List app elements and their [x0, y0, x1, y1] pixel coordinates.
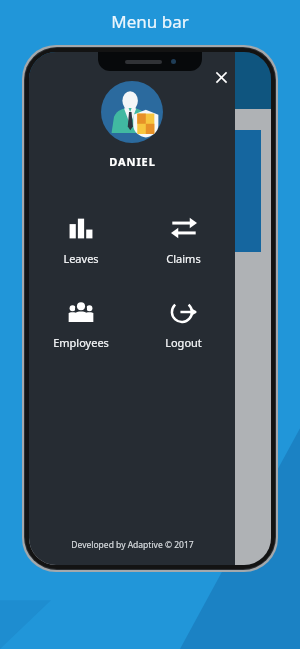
staticText: Claims [166, 251, 201, 266]
staticText: DANIEL [109, 154, 156, 169]
button[interactable]: Leaves [29, 213, 132, 268]
staticText: Employees [53, 335, 109, 350]
button[interactable]: Claims [132, 213, 235, 268]
button[interactable]: Logout [132, 297, 235, 352]
staticText: Menu bar [111, 10, 189, 33]
staticText: Leaves [63, 251, 99, 266]
staticText: Logout [165, 335, 202, 350]
button[interactable]: Employees [29, 297, 132, 352]
button[interactable]: Close menu [210, 66, 232, 88]
staticText: Developed by Adaptive © 2017 [71, 539, 194, 551]
